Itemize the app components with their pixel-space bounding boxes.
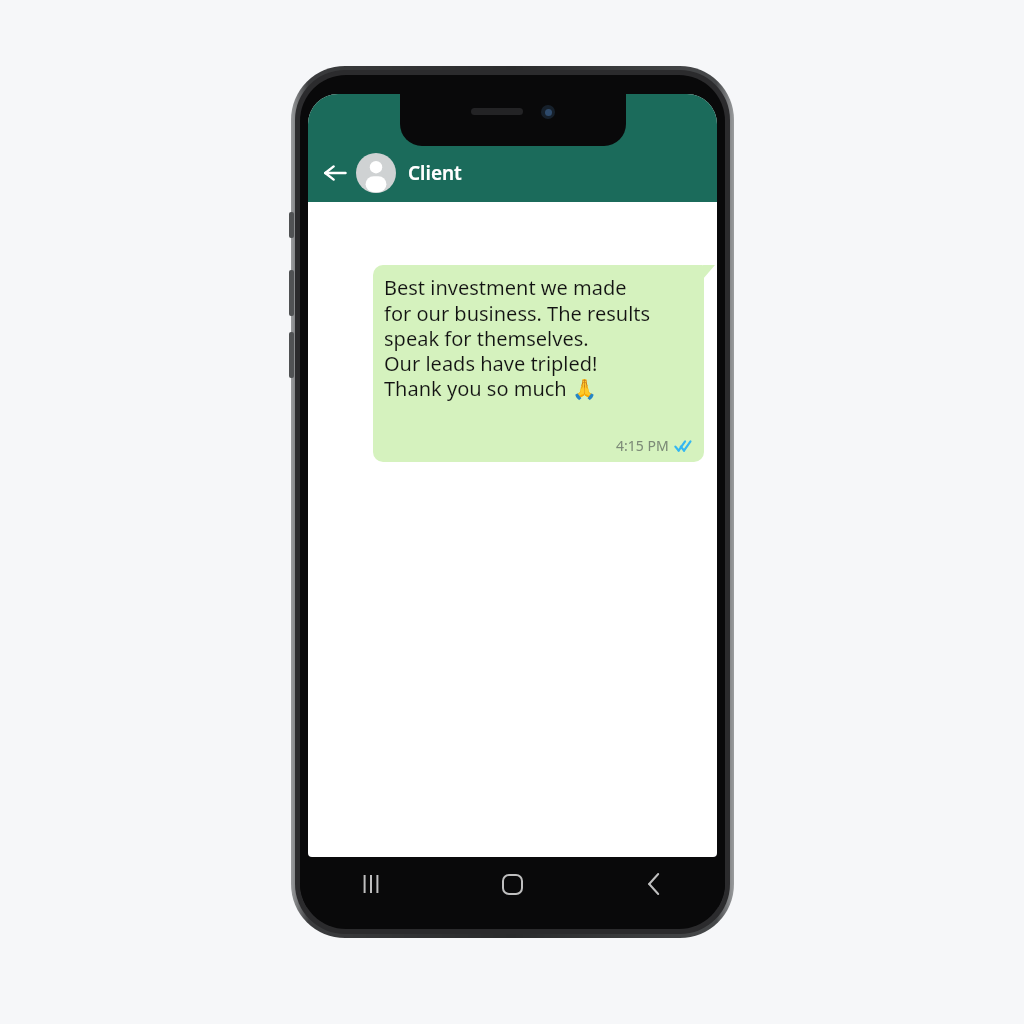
button[interactable]: Best investment we made for our business… <box>373 265 704 462</box>
button[interactable]: Home <box>441 861 583 907</box>
staticText: Best investment we made for our business… <box>384 274 651 402</box>
button[interactable]: Back <box>583 861 725 907</box>
button[interactable]: Back <box>314 152 356 194</box>
button[interactable]: Recent apps <box>300 861 441 907</box>
staticText: 4:15 PM <box>616 436 669 455</box>
button[interactable]: Contact photo <box>356 153 396 193</box>
staticText: Client <box>408 160 462 186</box>
